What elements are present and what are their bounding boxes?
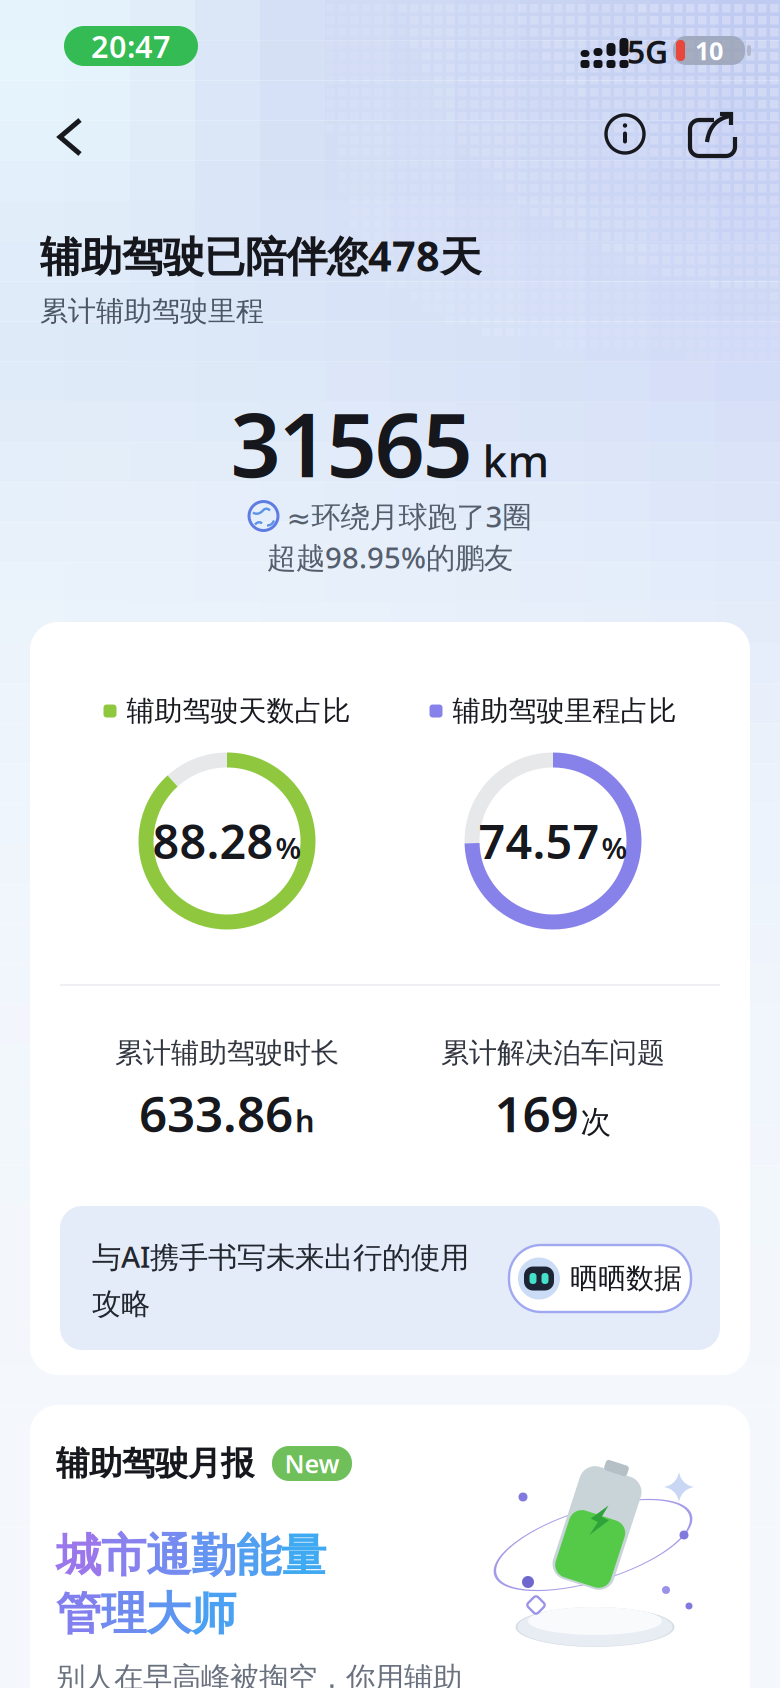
staticText: 169: [494, 1080, 578, 1146]
staticText: New: [284, 1447, 339, 1480]
staticText: 次: [580, 1103, 611, 1141]
staticText: 10: [695, 34, 723, 67]
button[interactable]: 晒晒数据: [509, 1245, 691, 1312]
staticText: 633.86: [139, 1080, 293, 1146]
staticText: 累计辅助驾驶时长: [115, 1036, 339, 1070]
staticText: ≈环绕月球跑了3圈: [286, 496, 531, 535]
button[interactable]: Back: [54, 116, 88, 158]
staticText: 与AI携手书写未来出行的使用: [92, 1237, 469, 1276]
staticText: 通: [146, 1528, 191, 1584]
button[interactable]: 辅助驾驶月报: [30, 1405, 750, 1688]
staticText: 超越98.95%的鹏友: [267, 537, 513, 576]
staticText: 累计解决泊车问题: [441, 1036, 665, 1070]
staticText: 理: [101, 1586, 146, 1642]
staticText: 攻略: [92, 1286, 150, 1322]
staticText: 累计辅助驾驶里程: [40, 294, 264, 328]
staticText: km: [482, 431, 549, 489]
staticText: 20:47: [91, 26, 171, 66]
staticText: 管: [56, 1586, 101, 1642]
staticText: 5G: [627, 30, 668, 72]
staticText: 辅助驾驶里程占比: [452, 694, 676, 728]
staticText: h: [295, 1100, 315, 1141]
button[interactable]: Info: [603, 112, 647, 156]
staticText: 晒晒数据: [570, 1261, 682, 1296]
staticText: 量: [281, 1528, 326, 1584]
staticText: 别人在早高峰被掏空，你用辅助: [56, 1660, 462, 1688]
button[interactable]: Share: [688, 110, 738, 160]
staticText: %: [601, 828, 627, 867]
staticText: 74.57: [478, 810, 599, 872]
staticText: 师: [191, 1586, 236, 1642]
staticText: 辅助驾驶天数占比: [126, 694, 350, 728]
staticText: 市: [101, 1528, 146, 1584]
staticText: 88.28: [152, 810, 273, 872]
staticText: 辅助驾驶已陪伴您478天: [40, 228, 481, 283]
staticText: 城: [56, 1528, 101, 1584]
staticText: 31565: [230, 385, 472, 501]
staticText: 勤: [191, 1528, 236, 1584]
staticText: 能: [236, 1528, 281, 1584]
staticText: 辅助驾驶月报: [56, 1443, 254, 1484]
staticText: 大: [146, 1586, 191, 1642]
staticText: %: [275, 828, 301, 867]
